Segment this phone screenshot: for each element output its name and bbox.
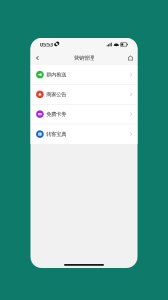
button[interactable]: Home [124, 51, 137, 65]
button[interactable]: 转客宝典 [30, 124, 137, 144]
button[interactable]: 群内推送 [30, 65, 137, 85]
button[interactable]: 商家公告 [30, 85, 137, 105]
staticText: 免费卡券 [46, 111, 66, 117]
button[interactable]: 免费卡券 [30, 104, 137, 124]
button[interactable]: Back [31, 51, 44, 65]
staticText: 商家公告 [46, 91, 66, 98]
staticText: 05:53 [40, 41, 53, 48]
staticText: 群内推送 [46, 71, 66, 78]
staticText: 营销管理 [74, 55, 94, 61]
staticText: 转客宝典 [46, 131, 66, 137]
